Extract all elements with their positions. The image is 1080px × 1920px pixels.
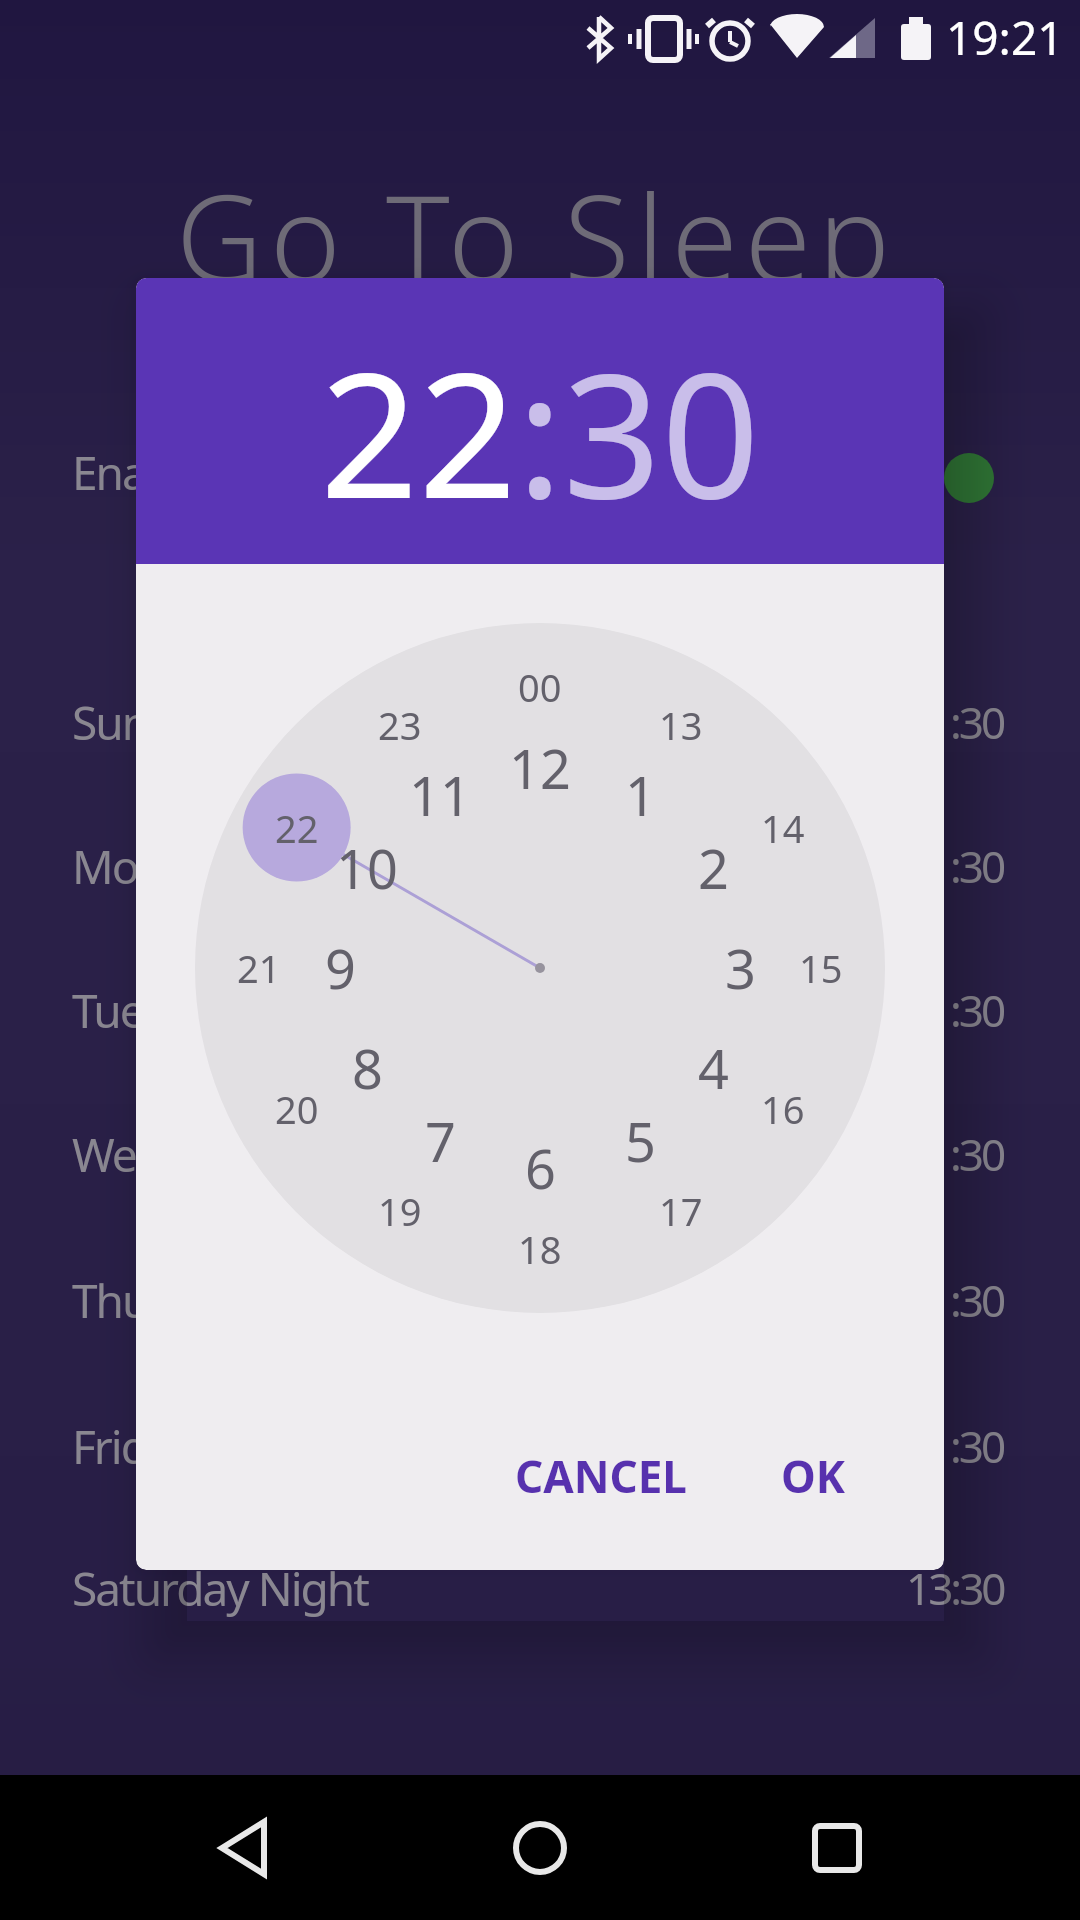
staticText: 8 — [352, 1031, 383, 1105]
staticText: Enabled — [72, 441, 233, 504]
staticText: 22:30 — [320, 314, 760, 548]
staticText: Thursday — [72, 1269, 258, 1332]
staticText: 13:30 — [906, 1558, 1004, 1618]
staticText: 14 — [761, 802, 805, 854]
staticText: 5 — [625, 1104, 656, 1178]
staticText: 16 — [761, 1083, 805, 1135]
staticText: :30 — [950, 1124, 1004, 1184]
staticText: 2 — [698, 831, 729, 905]
staticText: 21 — [237, 942, 281, 994]
button[interactable]: CANCEL — [491, 1426, 711, 1526]
staticText: Saturday Night — [72, 1557, 368, 1620]
staticText: 12 — [509, 731, 571, 805]
staticText: 15 — [799, 942, 843, 994]
button[interactable] — [944, 453, 994, 503]
staticText: 9 — [325, 931, 356, 1005]
button[interactable]: OK — [753, 1426, 873, 1526]
staticText: 10 — [336, 831, 398, 905]
staticText: Monday — [72, 835, 236, 898]
staticText: 1 — [625, 758, 656, 832]
staticText: OK — [781, 1446, 846, 1506]
staticText: Friday — [72, 1415, 193, 1478]
staticText: Wednesday — [72, 1123, 305, 1186]
staticText: 17 — [659, 1185, 703, 1237]
staticText: 3 — [725, 931, 756, 1005]
staticText: 18 — [518, 1223, 562, 1275]
staticText: CANCEL — [515, 1446, 687, 1506]
staticText: 7 — [425, 1104, 456, 1178]
staticText: Go To Sleep — [176, 154, 897, 317]
staticText: Sunday — [72, 691, 220, 754]
staticText: Tuesday — [72, 979, 236, 1042]
staticText: 23 — [378, 699, 422, 751]
staticText: :30 — [950, 980, 1004, 1040]
staticText: 13 — [659, 699, 703, 751]
staticText: 19:21 — [946, 6, 1064, 69]
staticText: :30 — [950, 1416, 1004, 1476]
staticText: 6 — [525, 1131, 556, 1205]
staticText: 00 — [518, 661, 562, 713]
staticText: 4 — [698, 1031, 729, 1105]
staticText: :30 — [950, 692, 1004, 752]
staticText: 11 — [409, 758, 471, 832]
staticText: :30 — [950, 836, 1004, 896]
staticText: 19 — [378, 1185, 422, 1237]
staticText: 20 — [275, 1083, 319, 1135]
staticText: :30 — [950, 1270, 1004, 1330]
staticText: 22 — [275, 802, 319, 854]
